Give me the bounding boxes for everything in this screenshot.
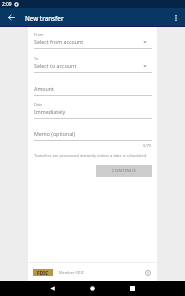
button[interactable]: Help <box>143 268 152 277</box>
button[interactable]: More options <box>166 8 185 27</box>
staticText: 2:09 <box>2 1 12 8</box>
button[interactable]: Recent apps <box>126 282 139 295</box>
staticText: To <box>34 56 39 61</box>
staticText: New transfer <box>25 14 64 22</box>
staticText: Amount <box>34 85 55 92</box>
button[interactable]: Back <box>46 282 59 295</box>
button[interactable]: CONTINUE <box>96 165 152 177</box>
staticText: Immediately <box>34 108 66 115</box>
button[interactable]: Back <box>2 8 21 27</box>
staticText: Date <box>34 102 43 107</box>
staticText: CONTINUE <box>112 168 137 174</box>
staticText: Select to account <box>34 62 77 69</box>
staticText: 0/75 <box>143 143 152 148</box>
staticText: Memo (optional) <box>34 130 76 137</box>
button[interactable]: Date <box>34 96 152 119</box>
staticText: Transfers are processed instantly unless… <box>34 153 148 158</box>
button[interactable]: Memo (optional) <box>34 119 152 141</box>
staticText: Select from account <box>34 38 84 45</box>
button[interactable]: Amount <box>34 73 152 96</box>
button[interactable]: From <box>34 27 152 49</box>
button[interactable]: To <box>34 49 152 73</box>
button[interactable]: Home <box>86 282 99 295</box>
staticText: From <box>34 32 44 37</box>
staticText: Member FDIC <box>59 270 85 275</box>
staticText: FDIC <box>37 270 49 276</box>
